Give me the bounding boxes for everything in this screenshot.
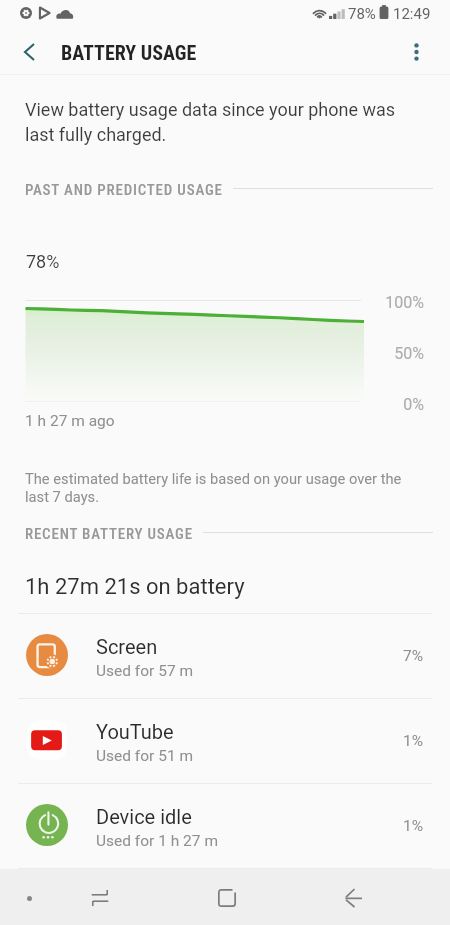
staticText: 1 h 27 m ago bbox=[25, 412, 115, 430]
button[interactable]: Home bbox=[204, 875, 250, 921]
staticText: 100% bbox=[384, 293, 424, 312]
staticText: Device idle bbox=[96, 805, 192, 828]
staticText: Used for 1 h 27 m bbox=[96, 832, 218, 850]
staticText: 1% bbox=[373, 817, 423, 835]
button[interactable]: Back bbox=[7, 30, 52, 74]
staticText: Used for 57 m bbox=[96, 662, 194, 680]
staticText: 0% bbox=[384, 395, 424, 414]
button[interactable]: Back bbox=[330, 875, 376, 921]
staticText: PAST AND PREDICTED USAGE bbox=[25, 181, 223, 199]
staticText: 78% bbox=[26, 251, 60, 272]
staticText: 1h 27m 21s on battery bbox=[25, 574, 245, 600]
staticText: RECENT BATTERY USAGE bbox=[25, 525, 193, 543]
staticText: last fully charged. bbox=[25, 124, 167, 145]
staticText: View battery usage data since your phone… bbox=[25, 99, 396, 120]
button[interactable]: Screen bbox=[0, 614, 450, 698]
staticText: The estimated battery life is based on y… bbox=[25, 470, 402, 487]
staticText: 1% bbox=[373, 732, 423, 750]
staticText: last 7 days. bbox=[25, 488, 100, 505]
staticText: BATTERY USAGE bbox=[61, 41, 197, 64]
staticText: 50% bbox=[384, 344, 424, 363]
staticText: 12:49 bbox=[393, 5, 431, 23]
staticText: YouTube bbox=[96, 720, 174, 743]
button[interactable]: More options bbox=[394, 30, 438, 74]
staticText: Screen bbox=[96, 635, 158, 658]
button[interactable]: YouTube bbox=[0, 699, 450, 783]
button[interactable]: Recent apps bbox=[77, 875, 123, 921]
button[interactable]: Menu bbox=[6, 875, 52, 921]
staticText: 7% bbox=[373, 647, 423, 665]
button[interactable]: Device idle bbox=[0, 784, 450, 868]
staticText: Used for 51 m bbox=[96, 747, 194, 765]
staticText: 78% bbox=[348, 5, 376, 23]
